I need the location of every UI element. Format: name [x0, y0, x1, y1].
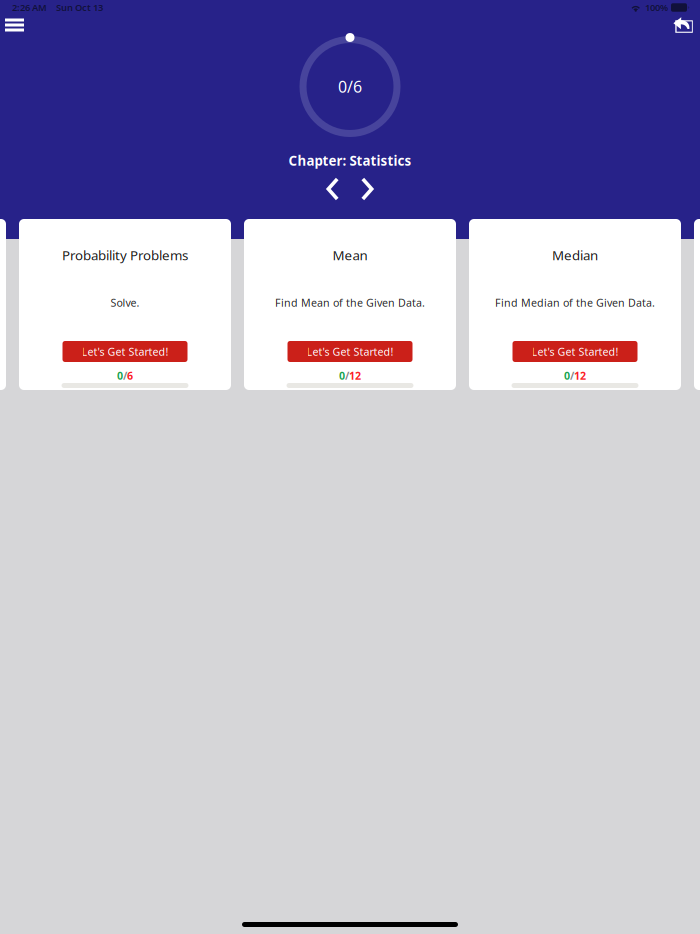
staticText: Median: [552, 246, 598, 264]
button[interactable]: Back: [673, 17, 694, 33]
staticText: 0: [117, 368, 123, 383]
staticText: Solve.: [110, 295, 139, 310]
staticText: Find Median of the Given Data.: [495, 295, 655, 310]
staticText: /: [570, 368, 574, 383]
button[interactable]: Let's Get Started!: [287, 341, 412, 362]
staticText: Find Mean of the Given Data.: [275, 295, 425, 310]
staticText: 100%: [645, 1, 668, 14]
button[interactable]: Next chapter: [361, 177, 374, 201]
staticText: Let's Get Started!: [306, 344, 393, 359]
staticText: 0: [564, 368, 570, 383]
button[interactable]: Let's Get Started!: [512, 341, 637, 362]
button[interactable]: Menu: [5, 18, 24, 31]
button[interactable]: Previous chapter: [326, 177, 339, 201]
staticText: Mean: [332, 246, 367, 264]
staticText: 2:26 AM: [12, 1, 47, 14]
staticText: 0: [339, 368, 345, 383]
staticText: Sun Oct 13: [56, 1, 103, 14]
staticText: 6: [127, 368, 133, 383]
staticText: /: [123, 368, 127, 383]
staticText: /: [345, 368, 349, 383]
button[interactable]: Let's Get Started!: [62, 341, 187, 362]
staticText: 12: [349, 368, 361, 383]
staticText: 12: [574, 368, 586, 383]
staticText: Probability Problems: [62, 246, 188, 264]
staticText: Let's Get Started!: [81, 344, 168, 359]
staticText: 0/6: [338, 76, 362, 97]
staticText: Chapter: Statistics: [288, 152, 411, 169]
staticText: Let's Get Started!: [531, 344, 618, 359]
